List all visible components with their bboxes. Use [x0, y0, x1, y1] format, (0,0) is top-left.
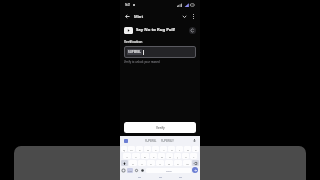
staticText: D	[144, 155, 146, 158]
button[interactable]: Backspace	[192, 160, 199, 166]
button[interactable]: D	[141, 153, 149, 159]
staticText: H	[169, 155, 171, 158]
staticText: K	[185, 155, 187, 158]
button[interactable]: Play video	[124, 27, 133, 34]
button[interactable]: Shift	[121, 160, 128, 166]
staticText: J	[177, 155, 178, 158]
staticText: I	[179, 148, 180, 151]
staticText: English	[166, 170, 172, 172]
staticText: X	[141, 162, 143, 165]
staticText: W	[130, 148, 133, 151]
button[interactable]: B	[165, 160, 173, 166]
button[interactable]: W	[128, 146, 135, 152]
button[interactable]: Expand	[180, 12, 189, 21]
staticText: A	[126, 155, 128, 158]
button[interactable]: I	[176, 146, 183, 152]
staticText: B	[168, 162, 170, 165]
staticText: P	[195, 148, 197, 151]
button[interactable]: Verify	[124, 122, 196, 133]
button[interactable]: SUPERBL	[145, 139, 157, 143]
staticText: Q	[123, 148, 125, 151]
button[interactable]: Translate	[134, 168, 139, 173]
staticText: Y	[163, 148, 165, 151]
button[interactable]: X	[138, 160, 146, 166]
staticText: N	[177, 162, 179, 165]
staticText: F	[153, 155, 155, 158]
button[interactable]: H	[166, 153, 173, 159]
staticText: O	[187, 148, 189, 151]
button[interactable]: C	[147, 160, 155, 166]
button[interactable]: N	[174, 160, 182, 166]
button[interactable]: J	[174, 153, 181, 159]
staticText: Verification	[124, 39, 143, 44]
button[interactable]: Enter	[192, 167, 198, 173]
staticText: Verify	[156, 126, 165, 130]
button[interactable]: M	[183, 160, 191, 166]
staticText: R	[147, 148, 149, 151]
staticText: S	[135, 155, 137, 158]
button[interactable]: G	[158, 153, 165, 159]
staticText: 9:41	[125, 3, 131, 7]
button[interactable]: E	[136, 146, 143, 152]
button[interactable]: T	[152, 146, 159, 152]
button[interactable]: Y	[160, 146, 167, 152]
button[interactable]: Refresh	[189, 27, 196, 34]
staticText: V	[159, 162, 161, 165]
button[interactable]: V	[156, 160, 164, 166]
staticText: Z	[132, 162, 134, 165]
button[interactable]: SUPERBLY	[161, 139, 174, 143]
staticText: G	[161, 155, 163, 158]
button[interactable]: Emoji	[121, 168, 126, 173]
button[interactable]: S	[132, 153, 140, 159]
button[interactable]: U	[168, 146, 175, 152]
button[interactable]: A	[123, 153, 131, 159]
button[interactable]: O	[184, 146, 191, 152]
button[interactable]: Z	[129, 160, 137, 166]
button[interactable]: Back	[123, 12, 132, 21]
button[interactable]: Voice input	[192, 138, 197, 143]
button[interactable]: R	[144, 146, 151, 152]
staticText: ?123	[128, 170, 132, 172]
staticText: Mint	[134, 14, 144, 19]
button[interactable]: L	[190, 153, 197, 159]
button[interactable]: Numbers	[127, 168, 133, 173]
staticText: M	[186, 162, 189, 165]
button[interactable]: P	[192, 146, 199, 152]
staticText: T	[155, 148, 157, 151]
button[interactable]: Q	[121, 146, 127, 152]
staticText: Verify to unlock your reward	[124, 60, 160, 64]
button[interactable]: F	[150, 153, 157, 159]
staticText: L	[193, 155, 195, 158]
button[interactable]: More options	[189, 12, 197, 20]
staticText: C	[150, 162, 152, 165]
button[interactable]: Space	[146, 168, 191, 173]
button[interactable]: Settings	[140, 168, 145, 173]
button[interactable]: SUPERBL	[124, 46, 196, 58]
staticText: E	[139, 148, 141, 151]
staticText: SUPERBL	[128, 50, 141, 54]
staticText: Say No to Rug Pull!	[136, 27, 176, 33]
button[interactable]: K	[182, 153, 189, 159]
button[interactable]: Keyboard settings	[124, 139, 128, 143]
staticText: U	[171, 148, 173, 151]
